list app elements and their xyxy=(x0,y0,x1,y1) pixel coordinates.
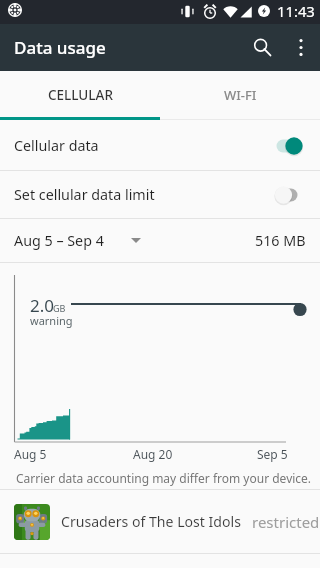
staticText: Sep 5 xyxy=(257,446,288,462)
staticText: Aug 5 xyxy=(14,446,47,462)
staticText: Set cellular data limit xyxy=(14,185,155,204)
button[interactable]: Cellular data xyxy=(0,121,320,170)
staticText: WI-FI xyxy=(224,86,257,104)
staticText: 11:43 xyxy=(277,1,315,21)
staticText: Cellular data xyxy=(14,136,99,155)
staticText: Data usage xyxy=(14,36,106,59)
button[interactable]: Aug 5 – Sep 4 xyxy=(14,231,141,250)
button[interactable]: CELLULAR xyxy=(0,71,160,121)
staticText: GB xyxy=(53,302,66,314)
staticText: Carrier data accounting may differ from … xyxy=(16,470,312,486)
staticText: warning xyxy=(30,313,73,328)
button[interactable]: Set cellular data limit xyxy=(0,171,320,218)
staticText: 516 MB xyxy=(255,231,306,250)
staticText: Aug 20 xyxy=(133,446,173,462)
button[interactable]: More options xyxy=(281,27,320,67)
staticText: restricted xyxy=(252,512,320,532)
staticText: Aug 5 – Sep 4 xyxy=(14,231,104,250)
button[interactable]: Search xyxy=(242,27,282,67)
button[interactable]: WI-FI xyxy=(160,71,320,121)
staticText: CELLULAR xyxy=(48,86,113,104)
button[interactable]: Crusaders of The Lost Idols xyxy=(0,490,320,553)
staticText: 2.0 xyxy=(30,294,55,317)
staticText: Crusaders of The Lost Idols xyxy=(61,512,241,531)
